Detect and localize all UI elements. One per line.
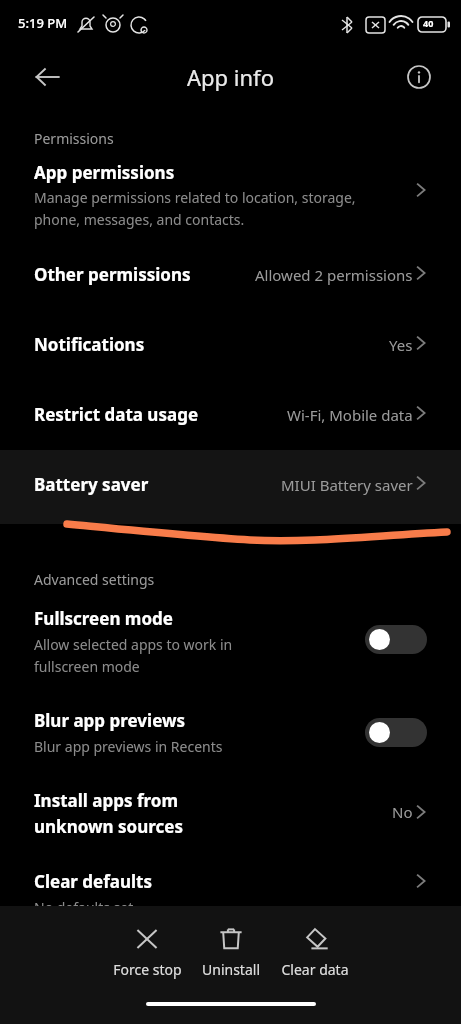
button[interactable]: Install apps from unknown sources (0, 780, 461, 846)
staticText: No defaults set (34, 898, 134, 917)
staticText: Advanced settings (34, 570, 155, 589)
button[interactable]: Battery saver (0, 450, 461, 524)
staticText: Uninstall (202, 960, 260, 979)
staticText: No (392, 802, 413, 822)
staticText: Battery saver (34, 473, 149, 496)
button[interactable]: App permissions (0, 150, 461, 230)
button[interactable]: Restrict data usage (0, 392, 461, 440)
staticText: Blur app previews (34, 709, 186, 732)
staticText: Manage permissions related to location, … (34, 188, 356, 207)
button[interactable]: Back (22, 52, 72, 102)
staticText: App permissions (34, 161, 175, 184)
button[interactable]: Clear data (273, 922, 357, 983)
staticText: Other permissions (34, 263, 191, 286)
staticText: Permissions (34, 129, 114, 148)
staticText: Clear data (281, 960, 349, 979)
staticText: unknown sources (34, 815, 183, 838)
button[interactable]: Toggle off (365, 625, 427, 654)
button[interactable]: About app (396, 54, 442, 100)
staticText: Notifications (34, 333, 145, 356)
staticText: Yes (389, 335, 413, 355)
staticText: phone, messages, and contacts. (34, 210, 245, 229)
staticText: Allow selected apps to work in (34, 635, 233, 654)
button[interactable]: Other permissions (0, 252, 461, 300)
staticText: Force stop (113, 960, 182, 979)
staticText: Install apps from (34, 789, 178, 812)
button[interactable]: Toggle off (365, 718, 427, 747)
staticText: App info (187, 62, 274, 92)
button[interactable]: Uninstall (189, 922, 273, 983)
button[interactable]: Clear defaults (0, 862, 461, 908)
staticText: Restrict data usage (34, 403, 199, 426)
staticText: 40 (423, 17, 434, 29)
staticText: MIUI Battery saver (281, 475, 413, 495)
staticText: 5:19 PM (18, 14, 68, 32)
staticText: fullscreen mode (34, 657, 140, 676)
button[interactable]: Notifications (0, 322, 461, 370)
staticText: Clear defaults (34, 870, 153, 893)
button[interactable]: Force stop (105, 922, 189, 983)
button[interactable]: Fullscreen mode (0, 596, 461, 678)
staticText: Wi-Fi, Mobile data (287, 405, 413, 425)
staticText: Blur app previews in Recents (34, 737, 223, 756)
button[interactable]: Blur app previews (0, 698, 461, 760)
staticText: Fullscreen mode (34, 607, 173, 630)
staticText: Allowed 2 permissions (255, 265, 413, 285)
